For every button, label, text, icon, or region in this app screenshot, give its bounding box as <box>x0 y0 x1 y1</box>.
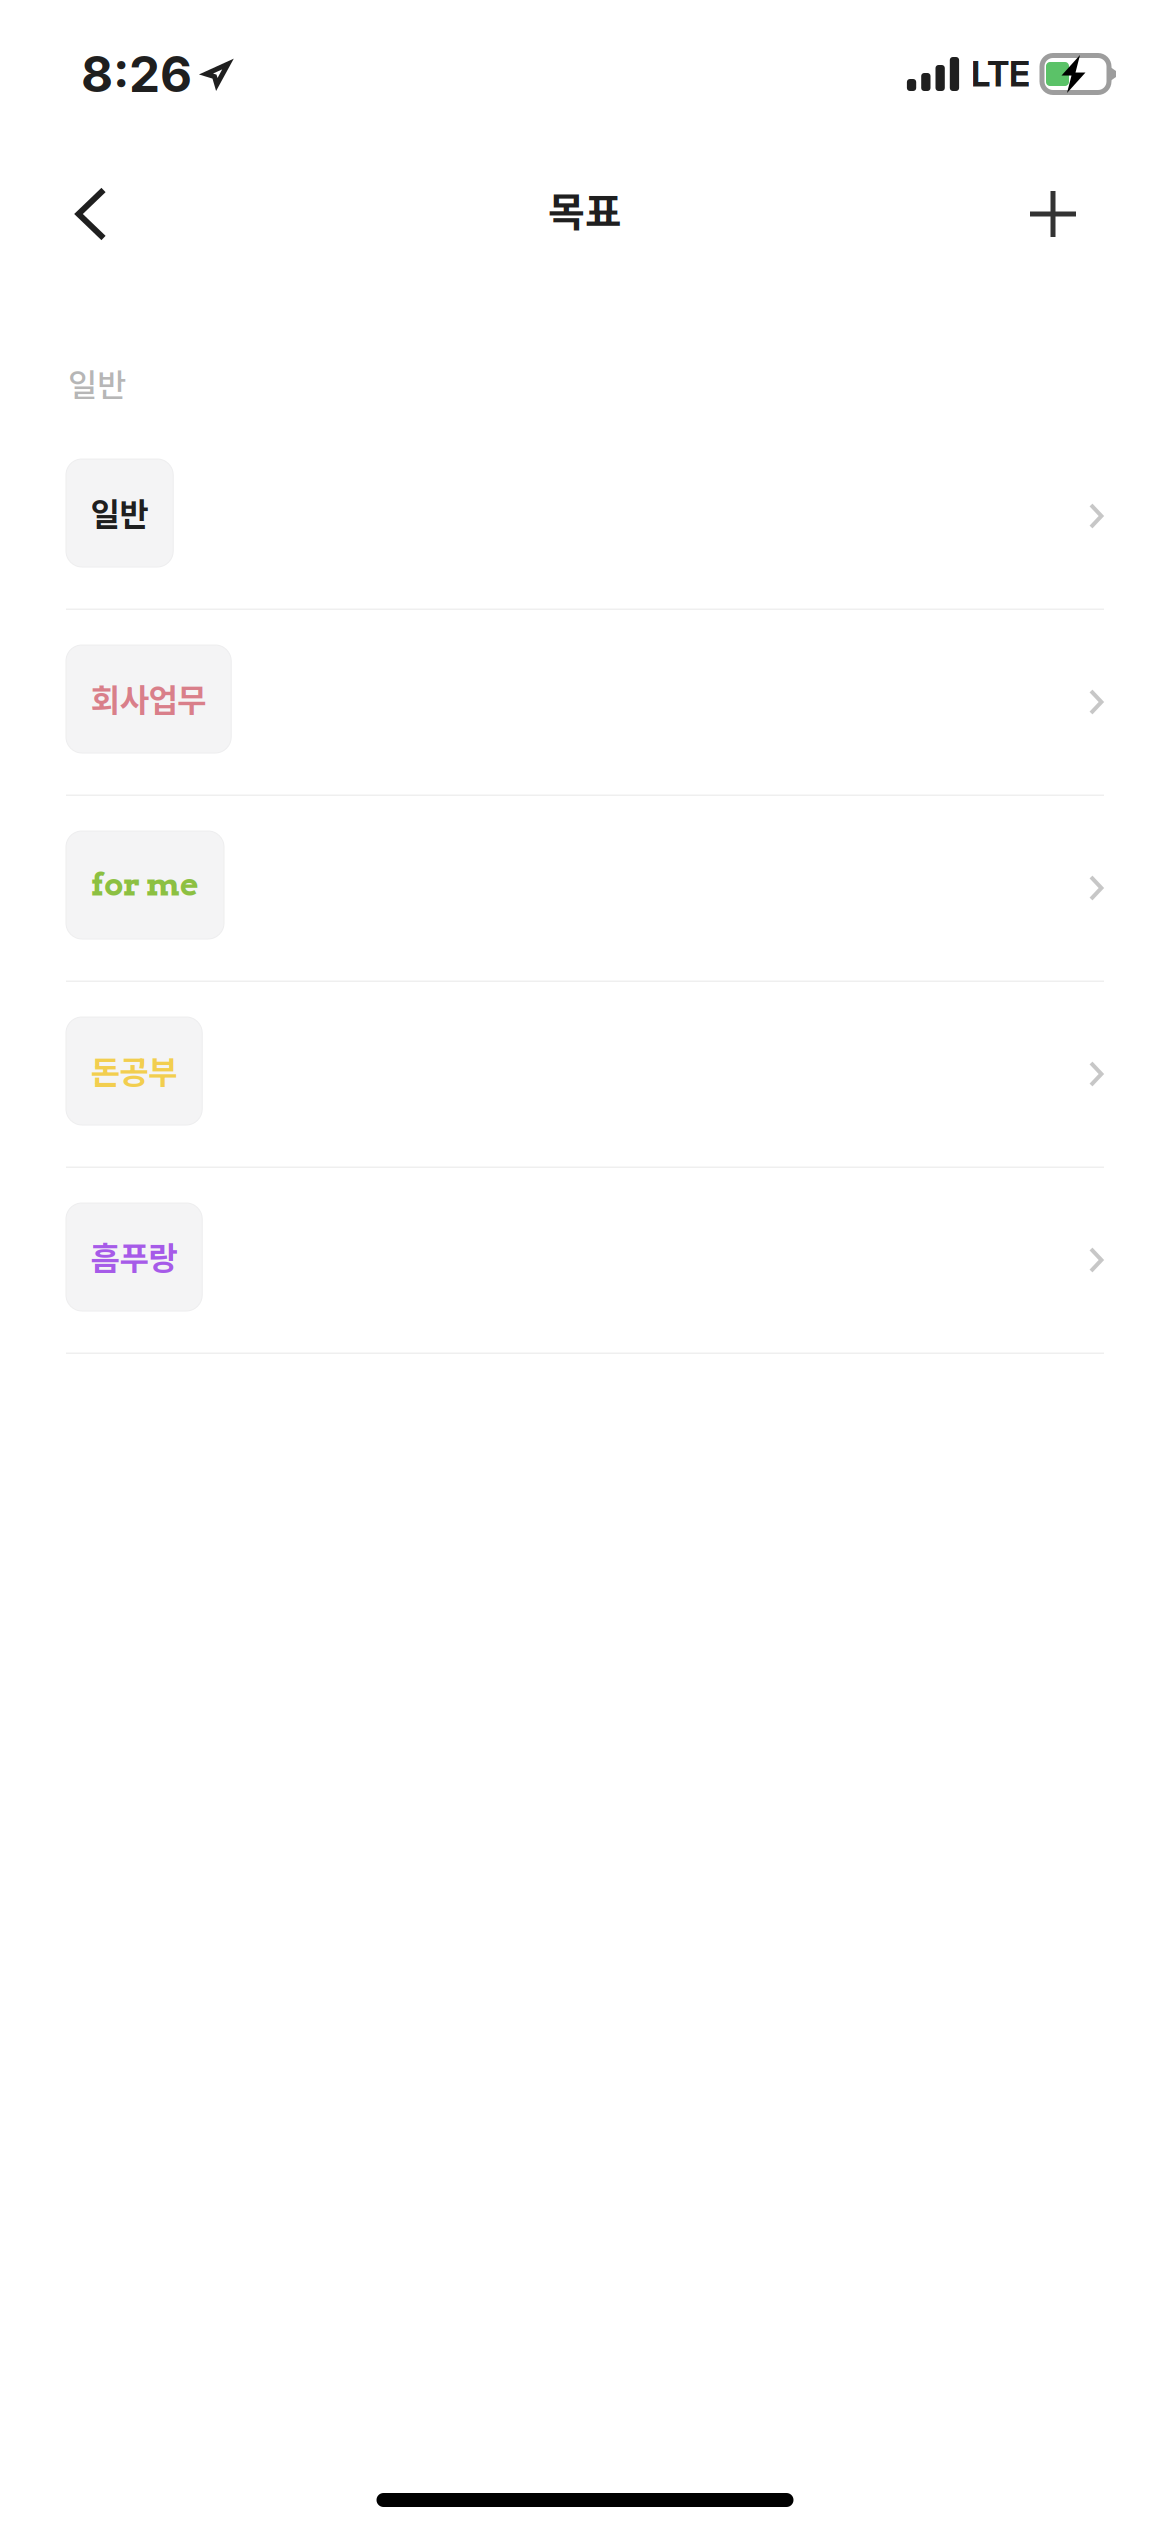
staticText: 돈공부 <box>91 1047 178 1093</box>
staticText: 흠푸랑 <box>91 1233 178 1279</box>
staticText: for me <box>91 865 199 903</box>
staticText: 일반 <box>68 360 126 406</box>
button[interactable]: 흠푸랑 <box>0 1168 1170 1354</box>
button[interactable]: 회사업무 <box>0 610 1170 796</box>
button[interactable]: 일반 <box>0 424 1170 610</box>
staticText: 일반 <box>91 489 149 535</box>
button[interactable]: Back <box>41 166 141 262</box>
staticText: LTE <box>971 53 1030 95</box>
button[interactable]: 돈공부 <box>0 982 1170 1168</box>
button[interactable]: Add goal <box>1003 166 1103 262</box>
button[interactable]: for me <box>0 796 1170 982</box>
staticText: 회사업무 <box>91 675 207 721</box>
staticText: 목표 <box>548 180 622 238</box>
staticText: 8:26 <box>81 44 192 104</box>
